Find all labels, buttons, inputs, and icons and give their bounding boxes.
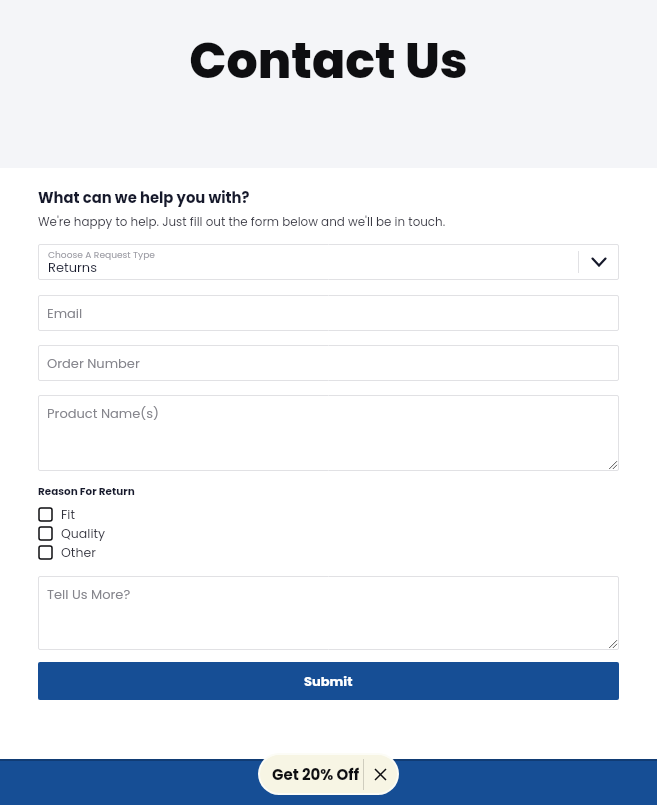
button[interactable]: Other — [38, 543, 619, 562]
staticText: Contact Us — [0, 27, 657, 96]
button[interactable]: Email — [38, 295, 619, 331]
button[interactable]: Quality — [38, 524, 619, 543]
staticText: Returns — [48, 258, 97, 276]
staticText: Submit — [304, 672, 353, 690]
staticText: Email — [47, 304, 83, 322]
staticText: Reason For Return — [38, 484, 135, 499]
button[interactable]: Submit — [38, 662, 619, 700]
staticText: We're happy to help. Just fill out the f… — [38, 214, 446, 231]
button[interactable]: Fit — [38, 505, 619, 524]
button[interactable]: Tell Us More? — [38, 576, 619, 650]
staticText: What can we help you with? — [38, 187, 250, 208]
staticText: Quality — [61, 525, 106, 542]
staticText: Choose A Request Type — [48, 248, 155, 261]
button[interactable]: Close promotion — [364, 755, 397, 793]
staticText: Fit — [61, 506, 75, 523]
staticText: Tell Us More? — [47, 585, 131, 603]
button[interactable]: Product Name(s) — [38, 395, 619, 471]
button[interactable]: Order Number — [38, 345, 619, 381]
button[interactable]: Get 20% Off — [260, 755, 363, 793]
button[interactable]: Choose A Request Type — [38, 244, 619, 280]
staticText: Get 20% Off — [272, 764, 360, 785]
staticText: Product Name(s) — [47, 404, 159, 422]
staticText: Other — [61, 544, 96, 561]
button[interactable]: Open request type list — [578, 244, 619, 280]
staticText: Order Number — [47, 354, 140, 372]
